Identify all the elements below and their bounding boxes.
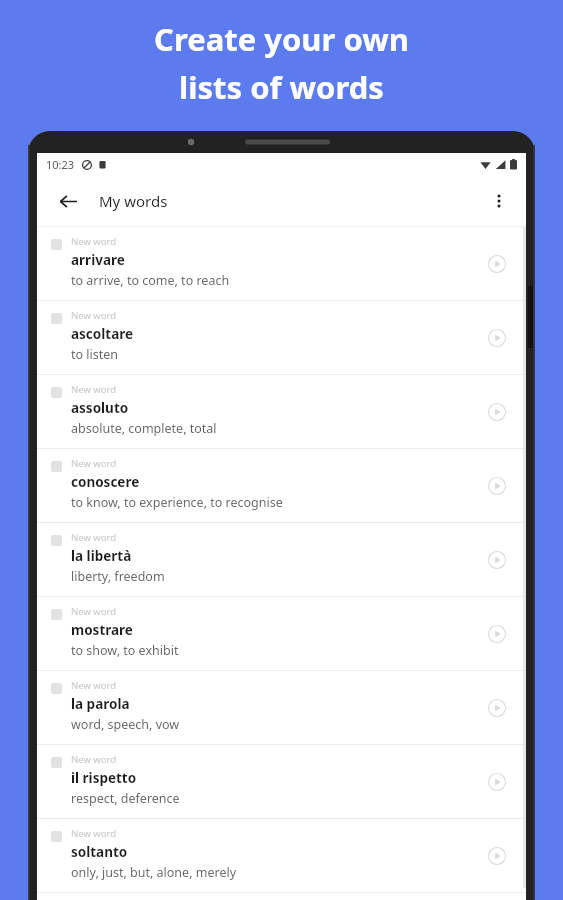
button[interactable]: Back (51, 184, 85, 218)
staticText: to show, to exhibit (71, 642, 179, 659)
button[interactable]: Play pronunciation (482, 323, 512, 353)
staticText: word, speech, vow (71, 716, 180, 733)
staticText: arrivare (71, 251, 125, 269)
button[interactable]: New word (37, 597, 526, 671)
staticText: liberty, freedom (71, 568, 165, 585)
button[interactable]: Play pronunciation (482, 767, 512, 797)
button[interactable]: More options (482, 184, 516, 218)
staticText: conoscere (71, 473, 140, 491)
staticText: 10:23 (46, 157, 75, 172)
button[interactable]: New word (37, 671, 526, 745)
button[interactable]: Play pronunciation (482, 249, 512, 279)
staticText: New word (71, 309, 117, 322)
button[interactable]: New word (37, 301, 526, 375)
button[interactable]: New word (37, 227, 526, 301)
button[interactable]: New word (37, 375, 526, 449)
button[interactable]: New word (37, 523, 526, 597)
button[interactable]: New word (37, 745, 526, 819)
staticText: New word (71, 753, 117, 766)
button[interactable]: Play pronunciation (482, 841, 512, 871)
staticText: assoluto (71, 399, 129, 417)
staticText: respect, deference (71, 790, 180, 807)
button[interactable]: Play pronunciation (482, 619, 512, 649)
staticText: il rispetto (71, 769, 137, 787)
staticText: to listen (71, 346, 119, 363)
staticText: only, just, but, alone, merely (71, 864, 237, 881)
button[interactable]: Play pronunciation (482, 471, 512, 501)
staticText: absolute, complete, total (71, 420, 217, 437)
staticText: New word (71, 827, 117, 840)
staticText: New word (71, 679, 117, 692)
staticText: New word (71, 383, 117, 396)
button[interactable]: New word (37, 819, 526, 893)
staticText: to know, to experience, to recognise (71, 494, 283, 511)
staticText: la libertà (71, 547, 132, 565)
staticText: to arrive, to come, to reach (71, 272, 230, 289)
button[interactable]: Play pronunciation (482, 397, 512, 427)
staticText: New word (71, 235, 117, 248)
staticText: lists of words (179, 66, 384, 108)
staticText: mostrare (71, 621, 133, 639)
staticText: la parola (71, 695, 130, 713)
staticText: ascoltare (71, 325, 134, 343)
button[interactable]: Play pronunciation (482, 693, 512, 723)
staticText: New word (71, 605, 117, 618)
staticText: New word (71, 457, 117, 470)
button[interactable]: Play pronunciation (482, 545, 512, 575)
staticText: My words (99, 191, 168, 211)
staticText: Create your own (154, 18, 409, 60)
staticText: New word (71, 531, 117, 544)
staticText: soltanto (71, 843, 128, 861)
button[interactable]: New word (37, 449, 526, 523)
